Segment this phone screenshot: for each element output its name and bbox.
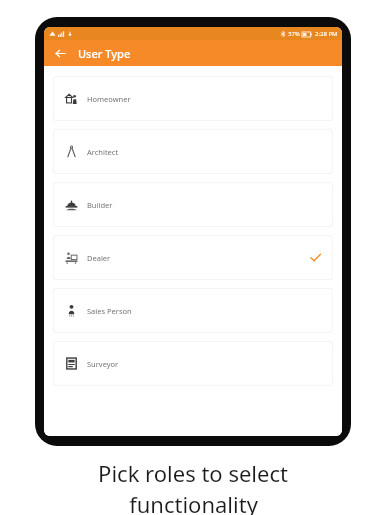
staticText: Pick roles to select xyxy=(98,458,288,488)
button[interactable]: Back xyxy=(50,43,70,63)
button[interactable]: Sales Person xyxy=(53,288,333,333)
button[interactable]: Dealer xyxy=(53,235,333,280)
staticText: Surveyor xyxy=(87,359,119,369)
staticText: functionality xyxy=(129,489,258,515)
staticText: Homeowner xyxy=(87,94,131,104)
button[interactable]: Builder xyxy=(53,182,333,227)
button[interactable]: Architect xyxy=(53,129,333,174)
button[interactable]: Homeowner xyxy=(53,76,333,121)
staticText: Dealer xyxy=(87,253,111,263)
staticText: Builder xyxy=(87,200,113,210)
staticText: Sales Person xyxy=(87,306,132,316)
staticText: 2:28 PM xyxy=(315,30,338,38)
staticText: User Type xyxy=(78,46,131,61)
button[interactable]: Surveyor xyxy=(53,341,333,386)
staticText: Architect xyxy=(87,147,119,157)
staticText: 37% xyxy=(288,30,300,38)
